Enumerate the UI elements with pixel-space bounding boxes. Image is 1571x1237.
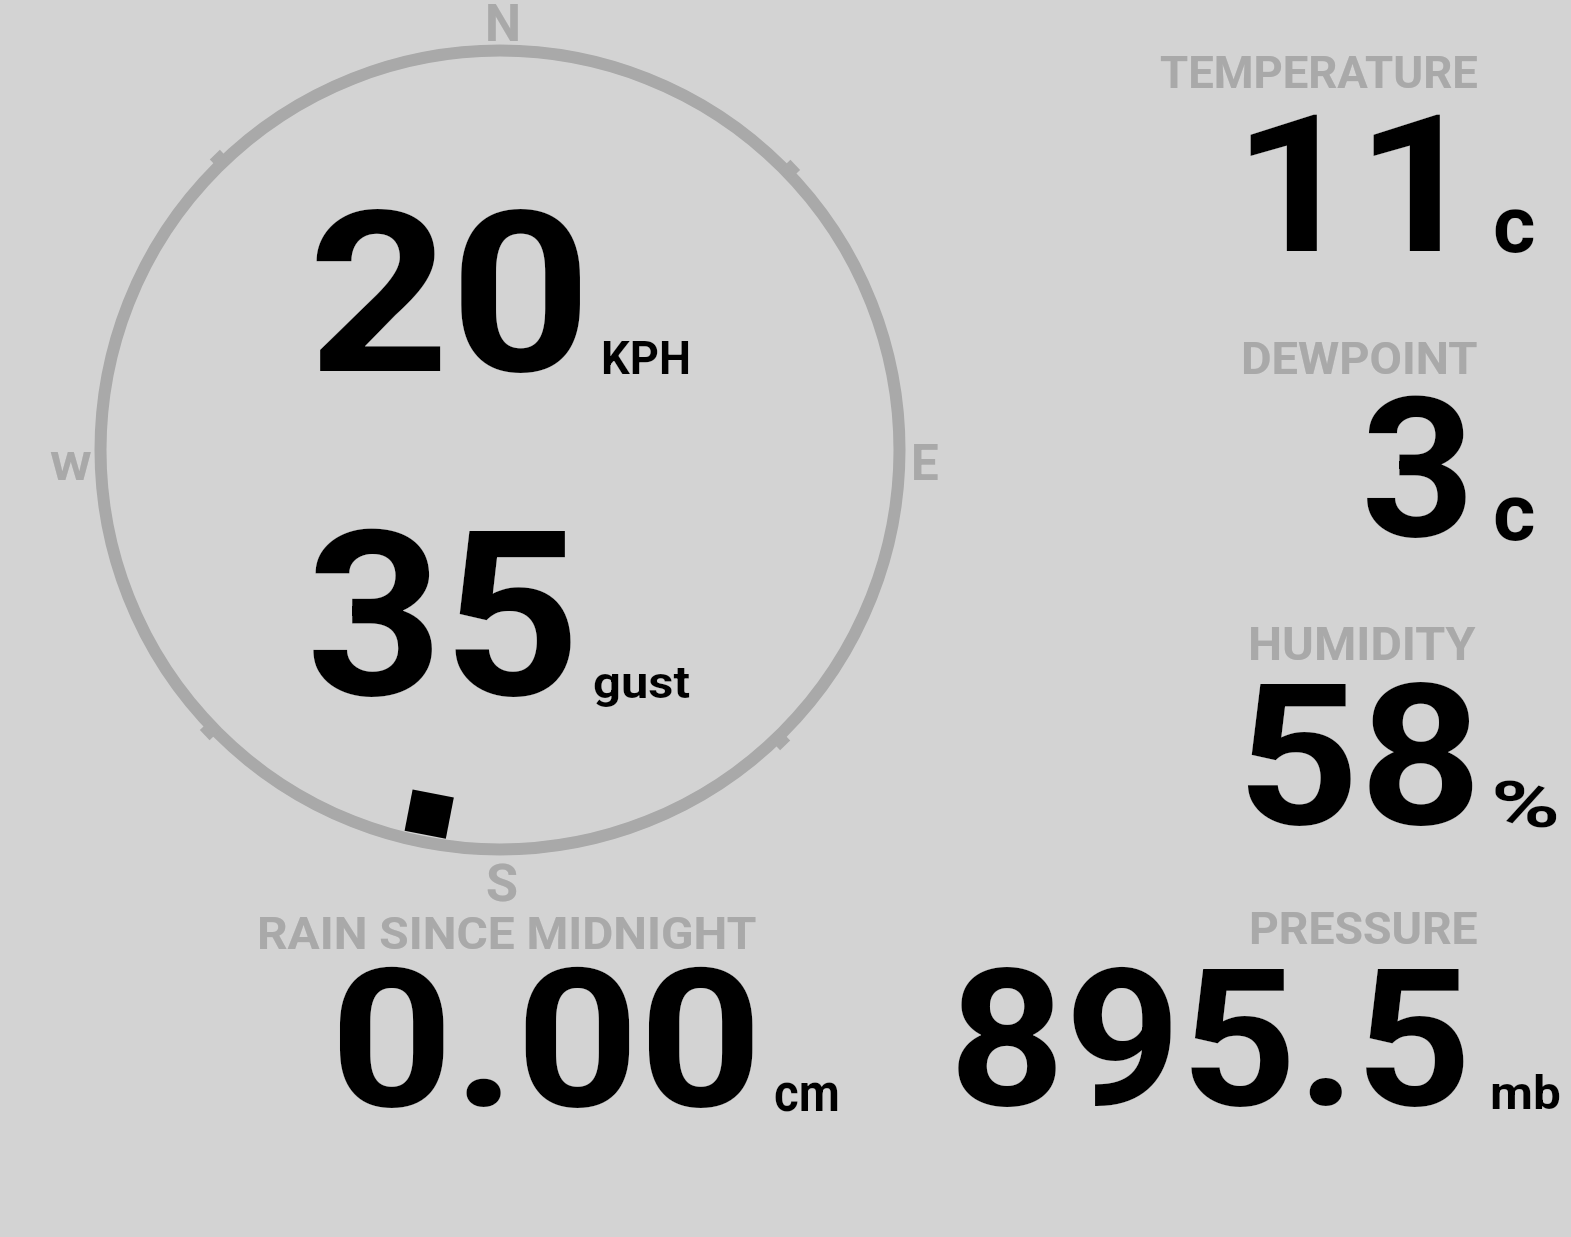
staticText: KPH	[601, 331, 692, 385]
staticText: E	[911, 434, 939, 493]
staticText: PRESSURE	[1249, 902, 1478, 955]
staticText: 20	[308, 162, 592, 426]
staticText: RAIN SINCE MIDNIGHT	[257, 907, 757, 960]
staticText: c	[1493, 178, 1536, 272]
staticText: %	[1491, 767, 1562, 843]
button[interactable]: Rain since midnight 0.00 cm	[230, 890, 870, 1140]
staticText: 0.00	[330, 927, 763, 1153]
staticText: c	[1493, 466, 1536, 560]
button[interactable]: Dewpoint 3 degrees Celsius	[1100, 300, 1560, 560]
staticText: 11	[1233, 74, 1480, 298]
staticText: 3	[1361, 355, 1475, 584]
staticText: S	[486, 853, 519, 914]
staticText: cm	[774, 1064, 840, 1124]
button[interactable]: Wind 20 KPH, gusting 35, direction south…	[80, 30, 920, 870]
staticText: N	[485, 0, 521, 54]
staticText: 58	[1237, 642, 1482, 872]
button[interactable]: Temperature 11 degrees Celsius	[1100, 30, 1560, 280]
staticText: HUMIDITY	[1248, 616, 1476, 671]
staticText: mb	[1490, 1065, 1562, 1120]
staticText: 895.5	[949, 928, 1472, 1152]
staticText: 35	[306, 482, 581, 752]
staticText: DEWPOINT	[1241, 332, 1478, 385]
staticText: gust	[593, 657, 691, 709]
staticText: TEMPERATURE	[1160, 46, 1478, 99]
button[interactable]: Humidity 58 percent	[1100, 590, 1560, 840]
staticText: W	[50, 445, 92, 490]
button[interactable]: Pressure 895.5 mb	[900, 890, 1570, 1140]
